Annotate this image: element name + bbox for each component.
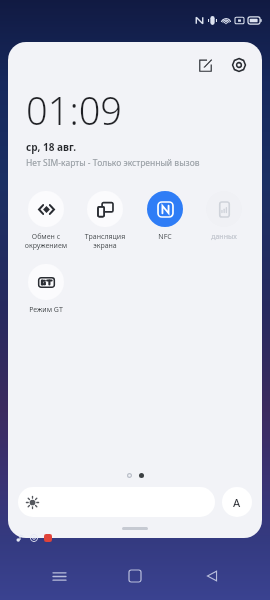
button[interactable]: NFC bbox=[139, 191, 191, 242]
button[interactable]: Auto brightness bbox=[222, 487, 252, 517]
staticText: NFC bbox=[139, 232, 191, 242]
staticText: 01:09 bbox=[26, 84, 123, 136]
button[interactable]: Menu bbox=[41, 558, 77, 594]
button[interactable]: Brightness bbox=[18, 487, 215, 517]
button[interactable]: Edit bbox=[194, 54, 216, 76]
staticText: Трансляция экрана bbox=[79, 232, 131, 250]
staticText: данных bbox=[198, 232, 250, 242]
staticText: Обмен с окружением bbox=[20, 232, 72, 250]
staticText: Нет SIM-карты - Только экстренный вызов bbox=[26, 157, 200, 169]
button[interactable]: GT mode bbox=[20, 264, 72, 315]
staticText: A bbox=[233, 495, 241, 510]
staticText: ср, 18 авг. bbox=[26, 140, 77, 154]
button[interactable]: Nearby share bbox=[20, 191, 72, 250]
button[interactable]: Screen cast bbox=[79, 191, 131, 250]
button[interactable]: Back bbox=[194, 558, 230, 594]
button[interactable]: Mobile data bbox=[198, 191, 250, 242]
staticText: Режим GT bbox=[20, 305, 72, 315]
button[interactable]: Settings bbox=[228, 54, 250, 76]
button[interactable]: Home bbox=[117, 558, 153, 594]
